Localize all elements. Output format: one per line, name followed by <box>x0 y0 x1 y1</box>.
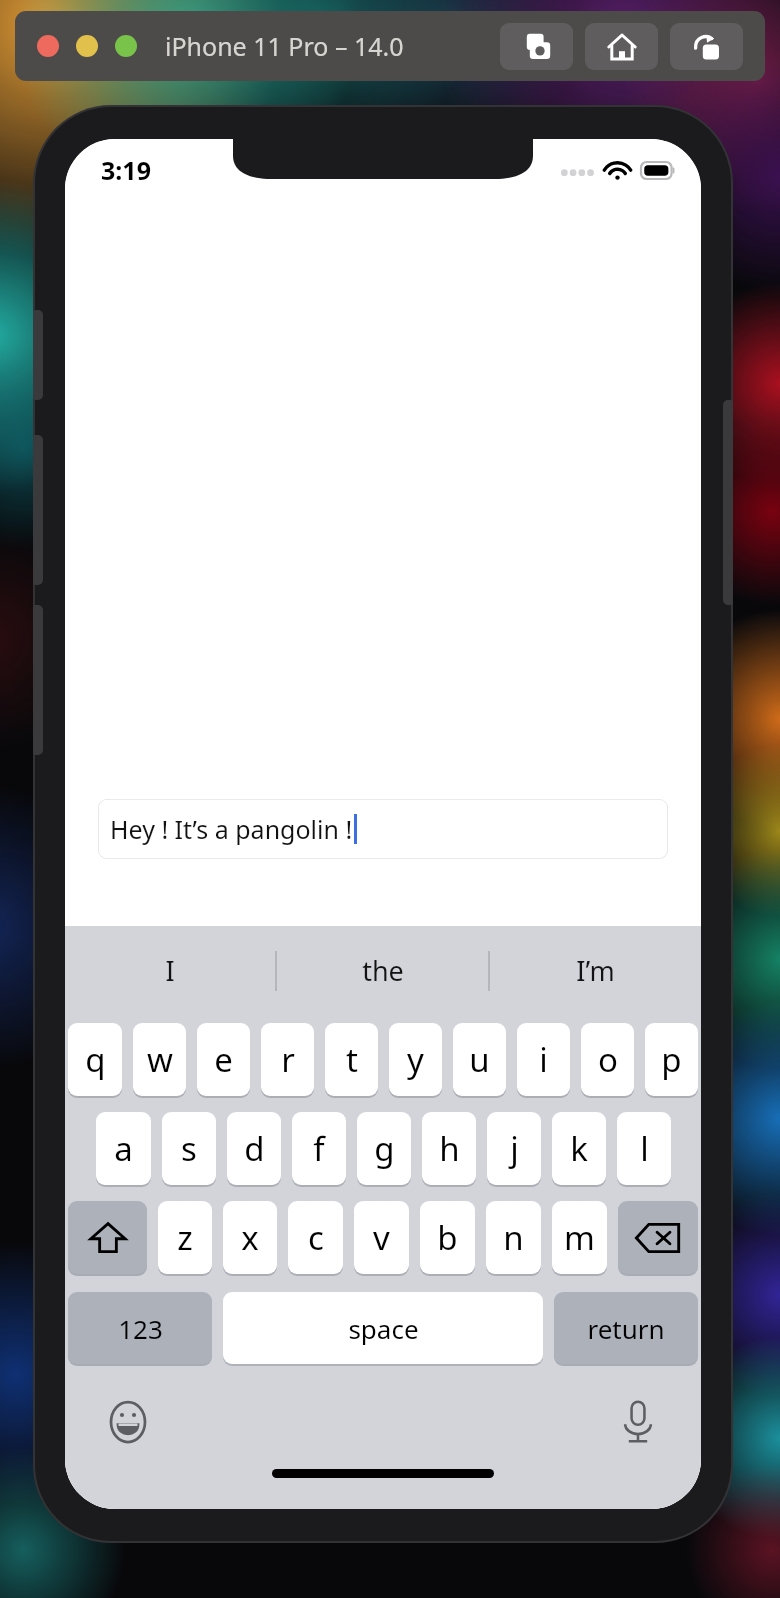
staticText: k <box>570 1126 588 1171</box>
button[interactable]: Shift <box>68 1201 147 1274</box>
button[interactable]: t <box>325 1023 378 1096</box>
staticText: 123 <box>118 1311 163 1346</box>
staticText: iPhone 11 Pro – 14.0 <box>165 29 404 63</box>
button[interactable]: u <box>453 1023 506 1096</box>
button[interactable]: Home <box>585 23 658 70</box>
staticText: j <box>510 1126 519 1171</box>
button[interactable]: e <box>197 1023 250 1096</box>
staticText: w <box>147 1037 173 1082</box>
button[interactable]: i <box>517 1023 570 1096</box>
button[interactable]: h <box>422 1112 476 1185</box>
button[interactable]: s <box>162 1112 216 1185</box>
button[interactable]: y <box>389 1023 442 1096</box>
staticText: h <box>439 1126 460 1171</box>
button[interactable]: l <box>617 1112 671 1185</box>
button[interactable]: f <box>292 1112 346 1185</box>
staticText: t <box>346 1037 358 1082</box>
button[interactable]: x <box>223 1201 277 1274</box>
button[interactable]: a <box>96 1112 151 1185</box>
button[interactable]: b <box>420 1201 475 1274</box>
button[interactable]: Rotate <box>670 23 743 70</box>
button[interactable]: k <box>552 1112 606 1185</box>
staticText: Hey ! It’s a pangolin ! <box>110 812 353 846</box>
staticText: z <box>177 1215 193 1260</box>
button[interactable]: Close window <box>37 35 59 57</box>
staticText: I’m <box>576 952 615 989</box>
staticText: d <box>244 1126 265 1171</box>
button[interactable]: space <box>223 1292 543 1364</box>
staticText: a <box>114 1126 133 1171</box>
staticText: p <box>661 1037 682 1082</box>
staticText: o <box>598 1037 618 1082</box>
button[interactable]: w <box>133 1023 186 1096</box>
staticText: l <box>640 1126 649 1171</box>
button[interactable]: the <box>277 926 488 1015</box>
button[interactable]: m <box>552 1201 607 1274</box>
button[interactable]: Maximise window <box>115 35 137 57</box>
button[interactable]: Screenshot <box>500 23 573 70</box>
button[interactable]: 123 <box>68 1292 212 1364</box>
staticText: c <box>308 1215 324 1260</box>
staticText: x <box>241 1215 259 1260</box>
staticText: q <box>85 1037 106 1082</box>
button[interactable]: I’m <box>490 926 701 1015</box>
button[interactable]: c <box>288 1201 343 1274</box>
staticText: b <box>437 1215 458 1260</box>
staticText: i <box>539 1037 548 1082</box>
staticText: v <box>373 1215 390 1260</box>
button[interactable]: o <box>581 1023 634 1096</box>
staticText: g <box>374 1126 395 1171</box>
staticText: r <box>281 1037 295 1082</box>
button[interactable]: Dictation <box>611 1395 665 1449</box>
staticText: f <box>313 1126 325 1171</box>
staticText: m <box>564 1215 595 1260</box>
button[interactable]: d <box>227 1112 281 1185</box>
button[interactable]: v <box>354 1201 409 1274</box>
button[interactable]: j <box>487 1112 541 1185</box>
button[interactable]: Hey ! It’s a pangolin ! <box>98 799 668 859</box>
button[interactable]: Backspace <box>618 1201 698 1274</box>
button[interactable]: Emoji keyboard <box>101 1395 155 1449</box>
staticText: the <box>362 952 404 989</box>
staticText: return <box>587 1311 665 1346</box>
button[interactable]: z <box>158 1201 212 1274</box>
button[interactable]: n <box>486 1201 541 1274</box>
staticText: I <box>165 952 175 989</box>
button[interactable]: return <box>554 1292 698 1364</box>
button[interactable]: I <box>65 926 275 1015</box>
staticText: s <box>181 1126 197 1171</box>
button[interactable]: g <box>357 1112 411 1185</box>
button[interactable]: r <box>261 1023 314 1096</box>
staticText: y <box>407 1037 424 1082</box>
staticText: 3:19 <box>101 153 151 187</box>
staticText: n <box>503 1215 524 1260</box>
button[interactable]: Minimise window <box>76 35 98 57</box>
staticText: space <box>348 1311 419 1346</box>
staticText: e <box>214 1037 233 1082</box>
staticText: u <box>469 1037 490 1082</box>
button[interactable]: q <box>68 1023 122 1096</box>
button[interactable]: p <box>645 1023 698 1096</box>
